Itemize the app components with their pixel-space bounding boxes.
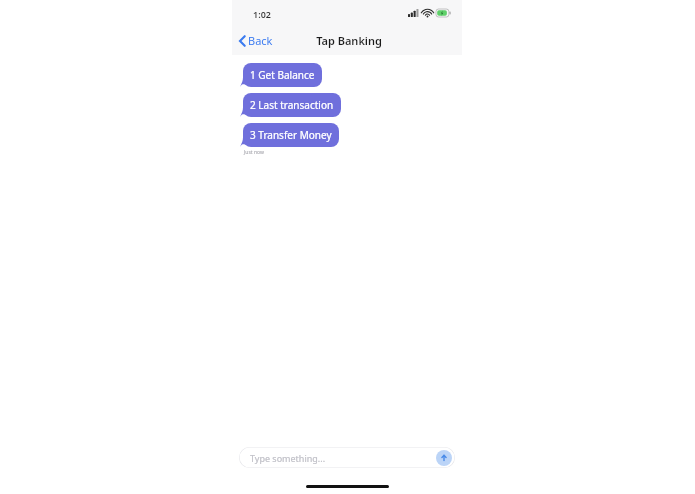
staticText: Back — [248, 33, 273, 48]
staticText: 2 Last transaction — [250, 98, 334, 112]
staticText: 1 Get Balance — [250, 68, 315, 82]
button[interactable]: 3 Transfer Money — [243, 123, 339, 147]
button[interactable]: Back — [237, 30, 275, 51]
staticText: Tap Banking — [316, 33, 382, 48]
button[interactable]: 2 Last transaction — [243, 93, 341, 117]
button[interactable]: Type something... — [239, 447, 455, 468]
staticText: 1:02 — [253, 8, 271, 20]
staticText: 3 Transfer Money — [250, 128, 332, 142]
button[interactable]: Send — [436, 450, 452, 466]
staticText: Type something... — [250, 452, 326, 464]
button[interactable]: 1 Get Balance — [243, 63, 322, 87]
staticText: Just now — [244, 149, 264, 156]
